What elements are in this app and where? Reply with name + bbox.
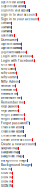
staticText: Remember me — [1, 101, 24, 104]
staticText: Nifty Admin — [1, 68, 15, 70]
staticText: SIGN IN — [1, 168, 11, 171]
staticText: Sign in to your account — [1, 9, 29, 12]
staticText: Login with Facebook — [1, 51, 26, 54]
staticText: Nifty Admin — [1, 64, 14, 66]
staticText: Sign in to your account — [1, 13, 36, 16]
staticText: Username — [1, 30, 11, 33]
staticText: Create a new account — [1, 134, 25, 137]
staticText: Background Image — [1, 155, 23, 158]
staticText: Forgot password? — [1, 121, 29, 125]
staticText: Create a new account — [1, 142, 35, 146]
staticText: Nifty Admin — [1, 71, 16, 75]
staticText: Username — [1, 38, 17, 42]
staticText: Nifty Admin — [1, 80, 19, 83]
staticText: Nifty Admin — [1, 76, 17, 79]
staticText: Sign in to your account — [1, 5, 25, 8]
staticText: Forgot password? — [1, 113, 24, 116]
staticText: Create a new account — [1, 130, 23, 133]
staticText: Remember me — [1, 96, 21, 100]
staticText: Remember me — [1, 92, 17, 95]
staticText: Username — [1, 22, 11, 25]
staticText: Forgot password? — [1, 105, 18, 108]
staticText: Background Image — [1, 147, 18, 150]
staticText: Remember me — [1, 88, 16, 91]
staticText: Sign in to your account — [1, 1, 24, 4]
staticText: Login with Facebook — [1, 43, 21, 45]
staticText: Background Image — [1, 151, 19, 154]
staticText: Login with Facebook — [1, 55, 32, 58]
staticText: SIGN IN — [1, 176, 12, 179]
staticText: SIGN IN — [1, 172, 12, 175]
staticText: Forgot password? — [1, 117, 24, 120]
staticText: Remember me — [1, 85, 15, 87]
staticText: Username — [1, 34, 14, 37]
staticText: Forgot password? — [1, 109, 18, 112]
staticText: Background Image — [1, 163, 31, 167]
staticText: Username — [1, 26, 11, 29]
staticText: Background Image — [1, 159, 27, 162]
staticText: Create a new account — [1, 126, 23, 129]
staticText: Sign in to your account — [1, 17, 38, 21]
staticText: Create a new account — [1, 138, 32, 141]
staticText: Login with Facebook — [1, 59, 34, 62]
staticText: SIGN IN — [1, 184, 12, 187]
staticText: Login with Facebook — [1, 47, 21, 50]
staticText: SIGN IN — [1, 180, 12, 183]
